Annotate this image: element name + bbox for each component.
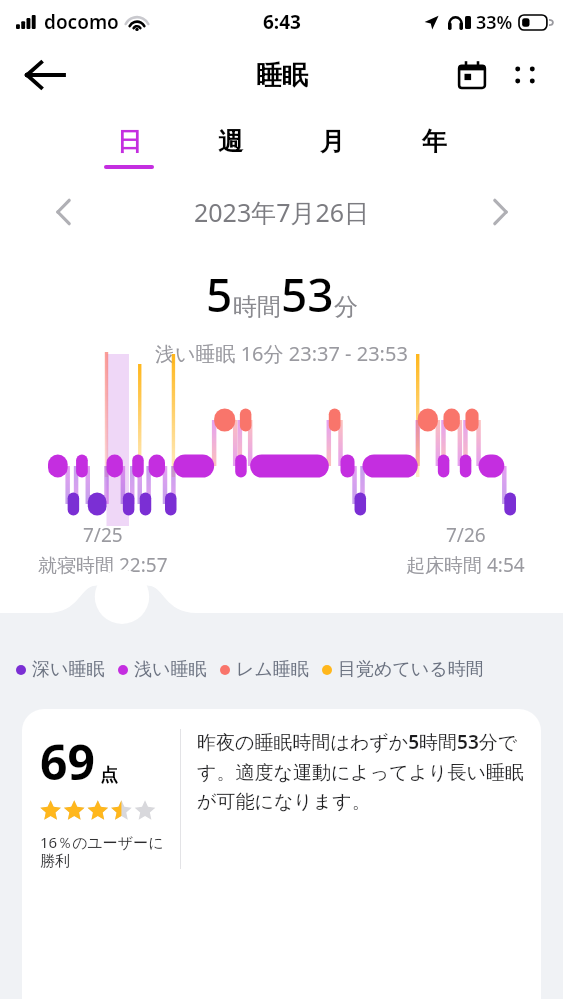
staticText: 点 bbox=[100, 764, 118, 787]
staticText: 目覚めている時間 bbox=[338, 658, 484, 681]
button[interactable]: Next day bbox=[479, 191, 521, 233]
staticText: 7/25 bbox=[83, 522, 123, 548]
staticText: 就寝時間 22:57 bbox=[38, 552, 168, 578]
staticText: 33% bbox=[476, 10, 513, 35]
button[interactable]: 週 bbox=[179, 126, 281, 169]
staticText: 時間 bbox=[233, 292, 281, 322]
button[interactable]: 月 bbox=[281, 126, 383, 169]
staticText: 6:43 bbox=[263, 9, 301, 35]
staticText: 分 bbox=[334, 292, 358, 322]
button[interactable]: 日 bbox=[78, 126, 179, 169]
button[interactable]: Previous day bbox=[42, 191, 84, 233]
button[interactable]: Calendar bbox=[449, 52, 495, 98]
staticText: 5 bbox=[206, 263, 233, 326]
staticText: 月 bbox=[320, 126, 345, 157]
staticText: 年 bbox=[422, 126, 447, 157]
staticText: 7/26 bbox=[446, 522, 486, 548]
staticText: 53 bbox=[281, 263, 334, 326]
staticText: 週 bbox=[218, 126, 243, 157]
staticText: 浅い睡眠 bbox=[134, 658, 207, 681]
staticText: 2023年7月26日 bbox=[194, 195, 370, 229]
staticText: 16％のユーザーに bbox=[40, 832, 164, 852]
staticText: 昨夜の睡眠時間はわずか5時間53分です。適度な運動によってより長い睡眠が可能にな… bbox=[197, 729, 533, 813]
staticText: 勝利 bbox=[40, 852, 70, 871]
button[interactable]: 69 bbox=[22, 709, 541, 999]
staticText: レム睡眠 bbox=[236, 658, 309, 681]
staticText: 深い睡眠 bbox=[32, 658, 105, 681]
staticText: 起床時間 4:54 bbox=[406, 552, 525, 578]
staticText: docomo bbox=[44, 9, 119, 35]
staticText: 日 bbox=[117, 126, 142, 157]
staticText: 69 bbox=[40, 729, 95, 794]
button[interactable]: Back bbox=[20, 50, 70, 100]
button[interactable]: More options bbox=[503, 53, 547, 97]
button[interactable]: 年 bbox=[383, 126, 485, 169]
staticText: 睡眠 bbox=[256, 59, 308, 92]
staticText: 浅い睡眠 16分 23:37 - 23:53 bbox=[155, 340, 408, 367]
